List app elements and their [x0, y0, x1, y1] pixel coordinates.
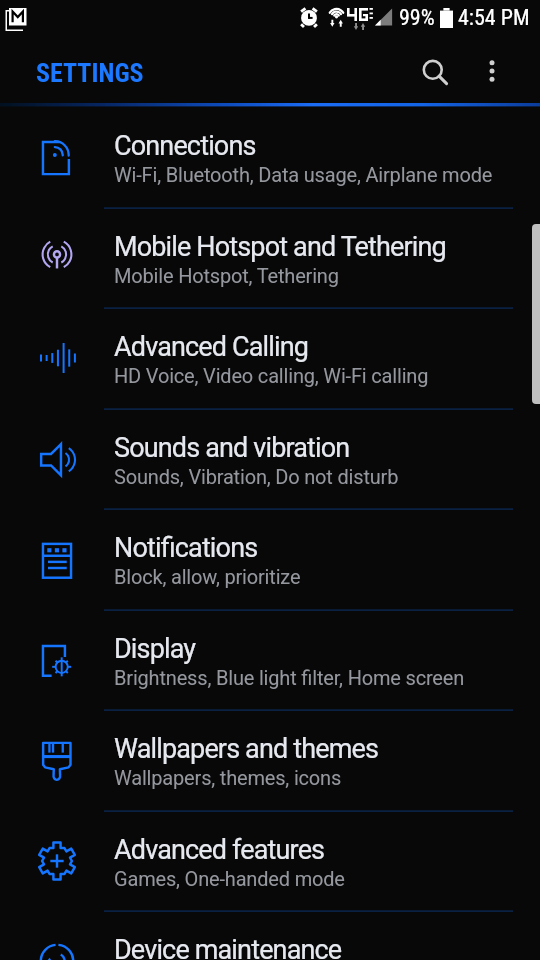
- button[interactable]: Advanced Calling: [0, 308, 540, 409]
- staticText: Mobile Hotspot, Tethering: [114, 264, 339, 287]
- button[interactable]: Search: [411, 49, 459, 97]
- staticText: Brightness, Blue light filter, Home scre…: [114, 666, 465, 689]
- staticText: Device maintenance: [114, 934, 342, 960]
- staticText: Display: [114, 633, 196, 665]
- staticText: Games, One-handed mode: [114, 867, 345, 890]
- button[interactable]: Wallpapers and themes: [0, 710, 540, 811]
- staticText: Mobile Hotspot and Tethering: [114, 231, 446, 263]
- button[interactable]: Sounds and vibration: [0, 409, 540, 510]
- staticText: Wi-Fi, Bluetooth, Data usage, Airplane m…: [114, 163, 493, 186]
- staticText: Connections: [114, 130, 256, 162]
- staticText: Advanced features: [114, 834, 325, 866]
- button[interactable]: Notifications: [0, 509, 540, 610]
- staticText: 99%: [399, 5, 435, 31]
- button[interactable]: Connections: [0, 107, 540, 208]
- staticText: Wallpapers and themes: [114, 733, 379, 765]
- staticText: 4:54 PM: [458, 5, 530, 31]
- staticText: SETTINGS: [36, 58, 144, 88]
- staticText: Notifications: [114, 532, 258, 564]
- button[interactable]: More options: [468, 47, 516, 95]
- button[interactable]: Advanced features: [0, 811, 540, 912]
- button[interactable]: Device maintenance: [0, 911, 540, 960]
- staticText: Sounds, Vibration, Do not disturb: [114, 465, 399, 488]
- button[interactable]: Mobile Hotspot and Tethering: [0, 208, 540, 309]
- staticText: Wallpapers, themes, icons: [114, 766, 342, 789]
- button[interactable]: Display: [0, 610, 540, 711]
- staticText: HD Voice, Video calling, Wi-Fi calling: [114, 364, 429, 387]
- staticText: Block, allow, prioritize: [114, 565, 301, 588]
- staticText: Advanced Calling: [114, 331, 309, 363]
- staticText: Sounds and vibration: [114, 432, 350, 464]
